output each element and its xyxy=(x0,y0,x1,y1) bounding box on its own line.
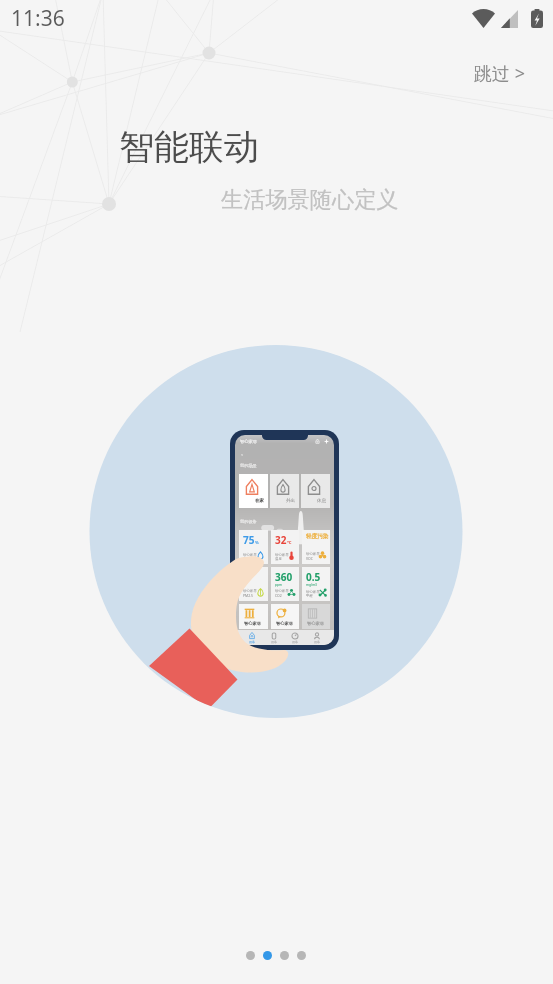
staticText: 设备 xyxy=(314,640,320,644)
button[interactable]: 360 xyxy=(271,567,299,601)
staticText: % xyxy=(255,540,259,546)
button[interactable]: 设备 xyxy=(291,632,299,644)
staticText: ＜ xyxy=(240,452,244,457)
button[interactable]: 设备 xyxy=(313,632,321,644)
staticText: 75 xyxy=(243,533,255,547)
button[interactable]: Page 2 xyxy=(263,951,272,960)
staticText: CO2 xyxy=(275,593,282,598)
staticText: ppm xyxy=(275,583,282,587)
staticText: 我的设备 xyxy=(240,519,257,524)
staticText: 360 xyxy=(275,570,293,584)
staticText: 温度 xyxy=(275,557,282,561)
staticText: 外出 xyxy=(286,498,295,504)
staticText: 甲醛 xyxy=(306,594,313,598)
staticText: 智心家居 xyxy=(244,621,261,626)
staticText: 32 xyxy=(275,533,287,547)
staticText: 设备 xyxy=(249,640,255,644)
staticText: 智心家居 xyxy=(306,590,320,594)
staticText: 智心家居 xyxy=(276,621,293,626)
button[interactable]: 0.5 xyxy=(302,567,330,601)
button[interactable]: Page 1 xyxy=(246,951,255,960)
button[interactable]: 设备 xyxy=(248,632,256,644)
button[interactable]: 智心家居 xyxy=(271,604,299,629)
button[interactable]: Back xyxy=(240,452,244,457)
button[interactable]: 智心家居 xyxy=(302,604,330,629)
staticText: 在家 xyxy=(255,498,264,504)
button[interactable]: 智心家居 xyxy=(239,567,268,601)
staticText: 智心家居 xyxy=(307,621,324,626)
staticText: 智心家居 xyxy=(243,553,257,557)
button[interactable]: 智心家居 xyxy=(239,604,268,629)
staticText: 设备 xyxy=(271,640,277,644)
button[interactable]: 32 xyxy=(271,530,299,564)
button[interactable]: 跳过 > xyxy=(464,53,535,94)
staticText: 11:36 xyxy=(11,4,65,33)
staticText: 智心家居 xyxy=(240,439,257,444)
staticText: 跳过 > xyxy=(474,61,525,86)
staticText: mg/m3 xyxy=(306,583,317,587)
staticText: VOC xyxy=(306,556,313,561)
button[interactable]: 轻度污染 xyxy=(302,530,330,564)
staticText: 设备 xyxy=(292,640,298,644)
staticText: ℃ xyxy=(287,540,292,546)
button[interactable]: Add device xyxy=(324,439,329,444)
staticText: 智能联动 xyxy=(119,125,259,169)
staticText: 0.5 xyxy=(306,570,321,584)
staticText: 休息 xyxy=(317,498,326,504)
button[interactable]: 休息 xyxy=(301,474,330,508)
staticText: 智心家居 xyxy=(243,589,257,593)
staticText: 我的场景 xyxy=(240,463,257,468)
button[interactable]: Home xyxy=(315,439,320,444)
button[interactable]: Page 4 xyxy=(297,951,306,960)
staticText: 智心家居 xyxy=(275,589,289,593)
staticText: 生活场景随心定义 xyxy=(221,186,399,214)
button[interactable]: 在家 xyxy=(239,474,268,508)
button[interactable]: 外出 xyxy=(270,474,299,508)
button[interactable]: Page 3 xyxy=(280,951,289,960)
staticText: PM2.5 xyxy=(243,593,253,598)
staticText: 轻度污染 xyxy=(306,533,329,540)
staticText: 智心家居 xyxy=(306,552,320,556)
button[interactable]: 75 xyxy=(239,530,268,564)
staticText: 智心家居 xyxy=(275,553,289,557)
button[interactable]: 设备 xyxy=(270,632,278,644)
